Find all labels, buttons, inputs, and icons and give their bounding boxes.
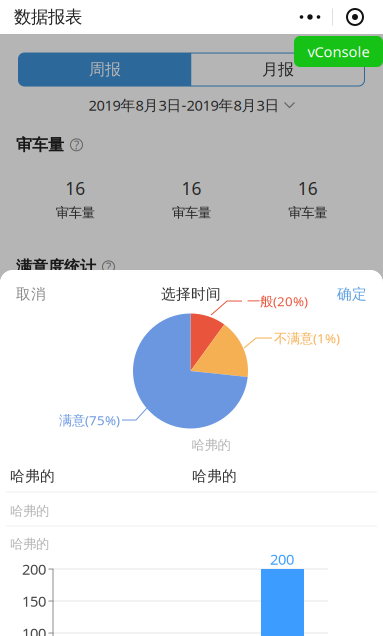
staticText: 数据报表 (14, 6, 82, 28)
staticText: 周报 (89, 60, 121, 79)
staticText: 2019年8月3日-2019年8月3日 (88, 95, 279, 115)
staticText: 不满意(1%) (274, 329, 340, 347)
staticText: 审车量 (16, 135, 64, 155)
button[interactable]: 周报 (18, 53, 191, 86)
staticText: 满意度统计 (16, 257, 96, 277)
button[interactable]: 取消 (0, 276, 76, 312)
staticText: 审车量 (172, 205, 211, 221)
staticText: 哈弗的 (192, 467, 237, 485)
staticText: 哈弗的 (10, 536, 49, 552)
staticText: 选择时间 (161, 285, 221, 303)
staticText: 100 (22, 623, 46, 636)
staticText: 哈弗的 (191, 437, 230, 453)
staticText: 150 (22, 591, 46, 611)
staticText: 200 (22, 559, 46, 579)
staticText: 16 (181, 177, 201, 200)
staticText: 审车量 (288, 205, 327, 221)
staticText: 满意(75%) (59, 411, 120, 429)
staticText: vConsole (307, 42, 369, 61)
button[interactable]: 2019年8月3日-2019年8月3日 (88, 94, 294, 116)
staticText: 哈弗的 (10, 503, 49, 519)
staticText: 确定 (337, 285, 367, 303)
staticText: 取消 (16, 285, 46, 303)
staticText: 16 (65, 177, 85, 200)
button[interactable]: 确定 (307, 276, 383, 312)
staticText: 月报 (262, 60, 294, 79)
staticText: 审车量 (56, 205, 95, 221)
button[interactable]: Close (333, 3, 377, 30)
staticText: 16 (298, 177, 318, 200)
staticText: ? (74, 137, 79, 153)
staticText: 哈弗的 (10, 467, 55, 485)
button[interactable]: 月报 (191, 53, 364, 86)
button[interactable]: More (288, 3, 332, 30)
staticText: 一般(20%) (247, 292, 308, 310)
staticText: 200 (270, 549, 294, 569)
staticText: ? (106, 259, 111, 275)
